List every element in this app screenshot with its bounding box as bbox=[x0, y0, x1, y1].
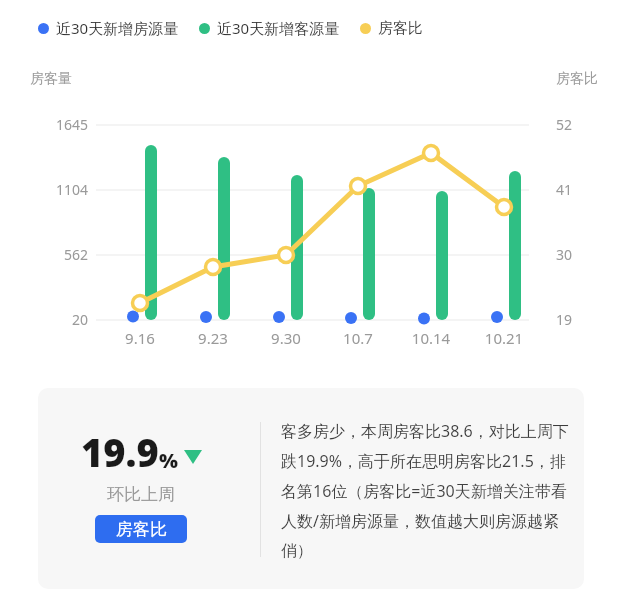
staticText: 房客比 bbox=[116, 519, 167, 540]
staticText: 41 bbox=[556, 180, 573, 199]
staticText: 近30天新增客源量 bbox=[217, 18, 340, 38]
staticText: 1645 bbox=[20, 115, 88, 134]
staticText: 562 bbox=[20, 245, 88, 264]
staticText: 房客量 bbox=[30, 70, 72, 88]
staticText: 10.7 bbox=[323, 328, 393, 348]
staticText: 客多房少，本周房客比38.6，对比上周下跌19.9%，高于所在思明房客比21.5… bbox=[281, 420, 571, 560]
staticText: 9.23 bbox=[178, 328, 248, 348]
staticText: 19.9 bbox=[81, 426, 159, 478]
button[interactable]: 房客比 bbox=[360, 19, 423, 38]
staticText: 10.21 bbox=[469, 328, 539, 348]
button[interactable]: 近30天新增客源量 bbox=[199, 18, 340, 38]
staticText: 近30天新增房源量 bbox=[56, 18, 179, 38]
staticText: 房客比 bbox=[556, 70, 598, 88]
staticText: 19 bbox=[556, 310, 573, 329]
staticText: 环比上周 bbox=[107, 484, 175, 505]
staticText: 30 bbox=[556, 245, 573, 264]
staticText: 20 bbox=[20, 310, 88, 329]
button[interactable]: 房客比 bbox=[95, 515, 187, 543]
staticText: 10.14 bbox=[396, 328, 466, 348]
staticText: 9.30 bbox=[251, 328, 321, 348]
staticText: 52 bbox=[556, 115, 573, 134]
staticText: % bbox=[159, 447, 178, 474]
staticText: 9.16 bbox=[105, 328, 175, 348]
staticText: 1104 bbox=[20, 180, 88, 199]
staticText: 房客比 bbox=[378, 19, 423, 38]
button[interactable]: 近30天新增房源量 bbox=[38, 18, 179, 38]
